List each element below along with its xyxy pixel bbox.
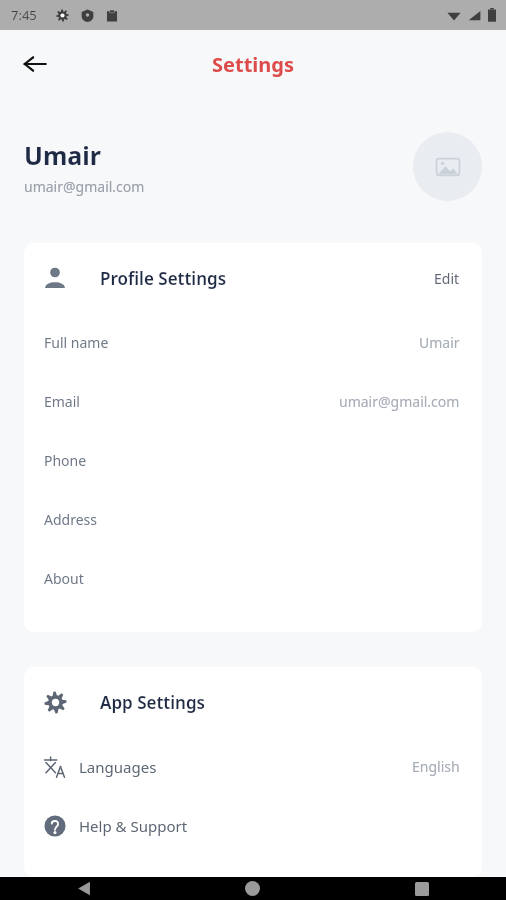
button[interactable]: Full name xyxy=(24,313,482,372)
staticText: Settings xyxy=(212,51,294,78)
button[interactable]: Email xyxy=(24,372,482,431)
staticText: Umair xyxy=(419,333,460,352)
staticText: Profile Settings xyxy=(100,267,227,290)
button[interactable]: Profile Settings xyxy=(24,243,482,313)
button[interactable]: About xyxy=(24,549,482,608)
button[interactable]: Languages xyxy=(24,737,482,796)
staticText: Phone xyxy=(44,451,87,470)
staticText: umair@gmail.com xyxy=(339,392,460,411)
button[interactable]: Home xyxy=(168,877,337,900)
staticText: Help & Support xyxy=(79,816,188,836)
staticText: About xyxy=(44,569,84,588)
button[interactable]: Change profile photo xyxy=(413,132,482,201)
staticText: 7:45 xyxy=(11,6,37,24)
staticText: umair@gmail.com xyxy=(24,177,145,196)
staticText: Full name xyxy=(44,333,109,352)
button[interactable]: Address xyxy=(24,490,482,549)
button[interactable]: App Settings xyxy=(24,667,482,737)
button[interactable]: Phone xyxy=(24,431,482,490)
staticText: Languages xyxy=(79,757,157,777)
staticText: Email xyxy=(44,392,80,411)
staticText: App Settings xyxy=(100,691,205,714)
staticText: Address xyxy=(44,510,97,529)
staticText: Edit xyxy=(434,269,460,288)
button[interactable]: Back xyxy=(12,41,58,87)
button[interactable]: Help & Support xyxy=(24,796,482,855)
button[interactable]: Recent apps xyxy=(337,877,506,900)
staticText: Umair xyxy=(24,138,101,172)
staticText: English xyxy=(412,757,460,776)
button[interactable]: Back xyxy=(0,877,168,900)
